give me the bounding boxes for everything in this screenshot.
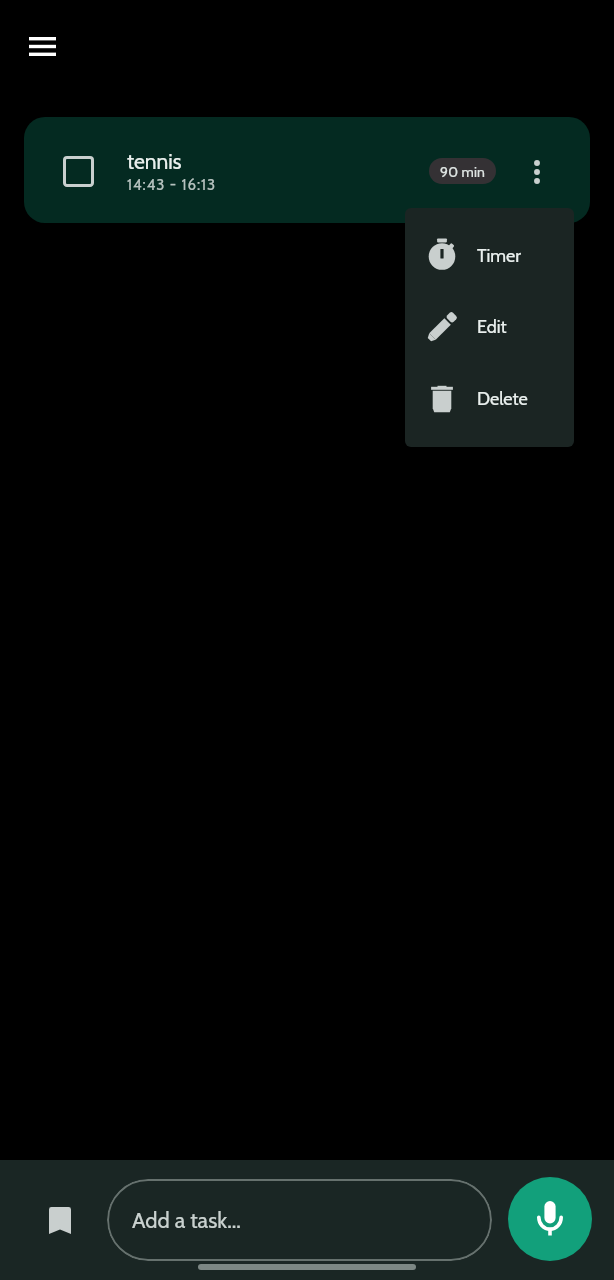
staticText: tennis xyxy=(127,149,182,175)
button[interactable]: Saved tasks xyxy=(36,1196,84,1244)
staticText: Add a task... xyxy=(132,1207,241,1234)
button[interactable]: Edit xyxy=(405,292,574,362)
staticText: 90 min xyxy=(440,163,486,180)
button[interactable]: More options xyxy=(513,148,561,196)
button[interactable]: Voice input xyxy=(508,1177,592,1261)
button[interactable]: Timer xyxy=(405,221,574,291)
button[interactable]: Add a task... xyxy=(107,1179,492,1261)
button[interactable]: Delete xyxy=(405,364,574,434)
staticText: Delete xyxy=(477,388,528,410)
staticText: Edit xyxy=(477,316,507,338)
staticText: 14:43 - 16:13 xyxy=(127,176,217,194)
button[interactable]: Mark task complete xyxy=(52,145,104,197)
staticText: Timer xyxy=(477,245,521,267)
button[interactable]: Mark task complete xyxy=(24,117,590,223)
button[interactable]: Open navigation menu xyxy=(14,22,70,70)
